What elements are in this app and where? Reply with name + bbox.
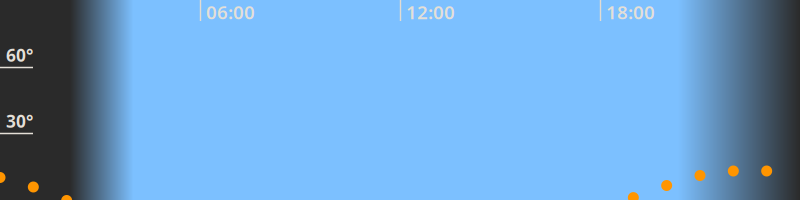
staticText: 60° — [6, 43, 33, 66]
staticText: 18:00 — [606, 0, 655, 24]
staticText: 30° — [6, 109, 33, 132]
staticText: 06:00 — [206, 0, 255, 24]
staticText: 12:00 — [406, 0, 455, 24]
